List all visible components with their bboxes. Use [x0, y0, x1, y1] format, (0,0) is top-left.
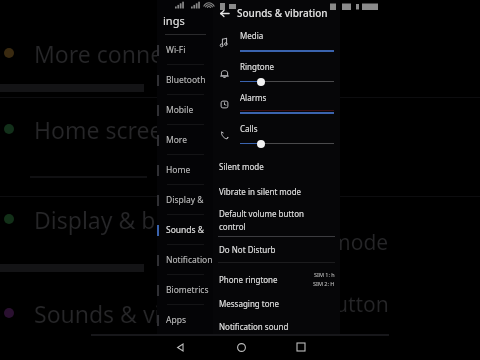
staticText: Default volume button [219, 208, 304, 219]
staticText: Display & brig [34, 204, 185, 235]
staticText: Wi-Fi [166, 44, 186, 56]
button[interactable]: Notifications [157, 245, 213, 275]
button[interactable]: Back [170, 337, 190, 357]
staticText: Media [240, 30, 264, 41]
staticText: Phone ringtone [219, 274, 278, 285]
button[interactable]: Calls [213, 120, 340, 151]
staticText: ings [163, 13, 185, 28]
staticText: More connec [34, 38, 175, 69]
staticText: Display & brig [166, 194, 213, 206]
button[interactable]: Home screen [157, 155, 213, 185]
button[interactable]: Alarms [213, 89, 340, 120]
staticText: Notification sound [219, 321, 289, 332]
staticText: SIM 2: H [313, 280, 335, 287]
staticText: Bluetooth [166, 74, 206, 86]
button[interactable]: Back [213, 2, 235, 24]
button[interactable]: Media [213, 27, 340, 58]
staticText: Sounds & vibr [34, 298, 185, 329]
staticText: Do Not Disturb [219, 244, 276, 255]
staticText: Sounds & vibration [237, 6, 328, 20]
button[interactable]: Home [231, 337, 251, 357]
staticText: Notifications [166, 254, 213, 266]
button[interactable]: Notification sound [213, 314, 340, 338]
staticText: Messaging tone [219, 298, 280, 309]
staticText: button [322, 290, 389, 319]
staticText: Silent mode [219, 161, 264, 172]
button[interactable]: Do Not Disturb [213, 237, 340, 262]
staticText: Vibrate in silent mode [219, 186, 302, 197]
button[interactable]: Silent mode [213, 154, 340, 179]
staticText: More connec [166, 134, 213, 146]
button[interactable]: Default volume button [213, 204, 340, 236]
staticText: Mobile netwo [166, 104, 213, 116]
button[interactable]: Vibrate in silent mode [213, 179, 340, 204]
staticText: Sounds & vibr [166, 224, 213, 236]
button[interactable]: Sounds & vibr [157, 215, 213, 245]
staticText: Alarms [240, 92, 267, 103]
button[interactable]: Apps [157, 305, 213, 335]
button[interactable]: Display & brig [157, 185, 213, 215]
button[interactable]: Recent apps [291, 337, 311, 357]
button[interactable]: Phone ringtone [213, 266, 340, 292]
staticText: Ringtone [240, 61, 275, 72]
button[interactable]: Mobile netwo [157, 95, 213, 125]
staticText: Home screen [34, 114, 177, 145]
button[interactable]: Bluetooth [157, 65, 213, 95]
staticText: t mode [318, 228, 389, 257]
staticText: Biometrics & [166, 284, 213, 296]
staticText: control [219, 221, 246, 232]
staticText: Home screen [166, 164, 213, 176]
button[interactable]: Ringtone [213, 58, 340, 89]
button[interactable]: More connec [157, 125, 213, 155]
staticText: Apps [166, 314, 186, 326]
button[interactable]: Messaging tone [213, 292, 340, 314]
button[interactable]: Wi-Fi [157, 35, 213, 65]
button[interactable]: Biometrics & [157, 275, 213, 305]
staticText: Calls [240, 123, 258, 134]
staticText: SIM 1: h [314, 271, 335, 278]
